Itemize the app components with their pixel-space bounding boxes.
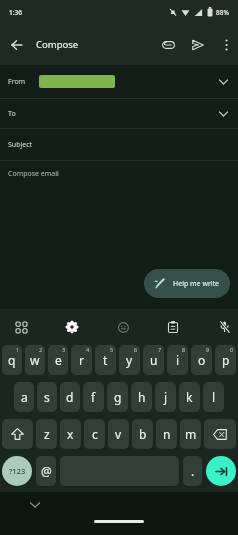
staticText: y [126,352,133,368]
staticText: l [212,389,216,405]
staticText: f [91,389,96,405]
staticText: u [150,352,158,368]
staticText: 6 [134,346,138,353]
staticText: j [164,389,168,405]
button[interactable]: t [95,345,116,375]
button[interactable] [8,36,26,54]
staticText: o [198,352,206,368]
button[interactable]: z [36,419,57,449]
staticText: ?123 [9,466,26,476]
button[interactable]: l [203,382,224,412]
button[interactable]: Help me write [144,269,230,298]
button[interactable] [188,35,208,55]
button[interactable] [112,316,134,338]
button[interactable]: Subject [0,129,238,160]
staticText: k [186,389,193,405]
staticText: 5 [110,346,114,353]
button[interactable]: j [155,382,176,412]
button[interactable]: From [0,65,238,98]
staticText: n [163,426,171,442]
button[interactable]: f [83,382,104,412]
button[interactable]: h [131,382,152,412]
staticText: Subject [8,140,33,150]
staticText: 0 [230,346,234,353]
button[interactable]: . [183,456,202,486]
button[interactable]: n [156,419,177,449]
staticText: 4 [86,346,90,353]
staticText: 3 [62,346,66,353]
button[interactable]: d [60,382,80,412]
button[interactable]: c [84,419,105,449]
staticText: . [191,463,195,479]
staticText: 7 [158,346,162,353]
staticText: Compose [36,38,79,51]
button[interactable]: s [37,382,57,412]
staticText: Compose email [8,169,59,179]
staticText: x [67,426,74,442]
staticText: v [115,426,122,442]
staticText: r [79,352,84,368]
staticText: g [114,389,122,405]
button[interactable]: o [191,345,212,375]
button[interactable] [204,419,236,449]
staticText: @ [41,463,52,479]
staticText: q [8,352,16,368]
button[interactable]: g [107,382,128,412]
button[interactable] [61,316,83,338]
staticText: From [8,77,26,87]
staticText: c [92,426,98,442]
staticText: t [103,352,108,368]
button[interactable]: x [60,419,81,449]
button[interactable]: r [71,345,92,375]
button[interactable]: w [25,345,45,375]
button[interactable]: k [179,382,200,412]
button[interactable]: a [14,382,34,412]
button[interactable] [10,316,32,338]
button[interactable]: m [180,419,201,449]
button[interactable]: To [0,99,238,128]
staticText: p [222,352,230,368]
button[interactable]: b [132,419,153,449]
staticText: 2 [39,346,43,353]
staticText: 88% [216,8,229,17]
staticText: 9 [206,346,210,353]
staticText: e [55,352,62,368]
staticText: i [176,352,180,368]
button[interactable]: @ [36,456,56,486]
staticText: 1:36 [9,8,22,17]
button[interactable] [206,456,236,486]
button[interactable] [213,316,235,338]
button[interactable]: q [2,345,22,375]
button[interactable] [158,35,178,55]
staticText: a [21,389,28,405]
button[interactable]: i [167,345,188,375]
button[interactable]: ?123 [2,456,32,486]
staticText: 8 [182,346,186,353]
button[interactable]: e [48,345,68,375]
staticText: b [139,426,147,442]
staticText: w [30,352,40,368]
button[interactable] [162,316,184,338]
staticText: Help me write [173,279,220,289]
button[interactable]: p [215,345,236,375]
staticText: 1 [16,346,20,353]
button[interactable]: y [119,345,140,375]
staticText: s [44,389,50,405]
staticText: d [66,389,74,405]
staticText: m [185,426,197,442]
staticText: h [138,389,146,405]
button[interactable] [2,419,33,449]
button[interactable]: u [143,345,164,375]
staticText: To [8,109,16,119]
button[interactable] [218,37,234,53]
staticText: z [44,426,50,442]
button[interactable]: v [108,419,129,449]
